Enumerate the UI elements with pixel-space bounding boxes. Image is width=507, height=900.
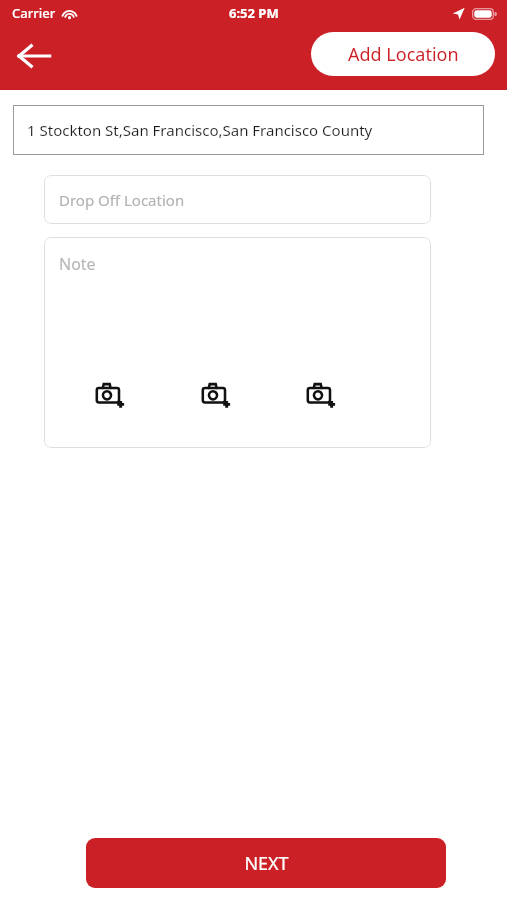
staticText: Drop Off Location [59, 190, 185, 210]
button[interactable]: Add photo 2 [194, 372, 238, 416]
staticText: 6:52 PM [229, 4, 279, 22]
button[interactable]: Drop Off Location [44, 175, 431, 224]
button[interactable]: Add Location [311, 32, 495, 76]
button[interactable]: 1 Stockton St,San Francisco,San Francisc… [13, 105, 484, 155]
staticText: 1 Stockton St,San Francisco,San Francisc… [27, 120, 373, 140]
staticText: NEXT [244, 851, 289, 876]
button[interactable]: Add photo 3 [299, 372, 343, 416]
staticText: Add Location [348, 42, 459, 67]
button[interactable]: NEXT [86, 838, 446, 888]
staticText: Carrier [12, 4, 56, 22]
button[interactable]: Back [10, 32, 58, 80]
button[interactable]: Add photo 1 [88, 372, 132, 416]
staticText: Note [59, 253, 96, 275]
